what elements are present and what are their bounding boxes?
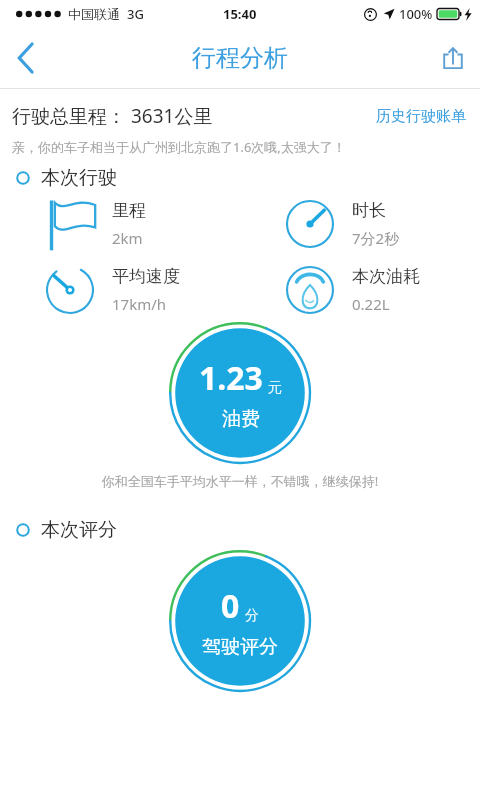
staticText: 0.22L	[352, 294, 390, 314]
staticText: 7分2秒	[352, 228, 400, 248]
button[interactable]: 里程	[0, 196, 240, 252]
button[interactable]: 1.23	[169, 322, 311, 464]
staticText: 行程分析	[192, 43, 288, 73]
staticText: 2km	[112, 228, 143, 248]
staticText: 17km/h	[112, 294, 167, 314]
button[interactable]: 历史行驶账单	[374, 105, 468, 128]
staticText: 你和全国车手平均水平一样，不错哦，继续保持!	[0, 472, 480, 490]
staticText: 100%	[399, 5, 433, 23]
button[interactable]: Back	[0, 32, 52, 84]
staticText: 中国联通	[68, 6, 120, 22]
staticText: 历史行驶账单	[376, 107, 466, 126]
staticText: 时长	[352, 200, 386, 221]
staticText: 15:40	[223, 5, 257, 23]
staticText: 本次行驶	[41, 166, 117, 190]
staticText: 本次评分	[41, 518, 117, 542]
staticText: 分	[245, 607, 259, 625]
staticText: 里程	[112, 200, 146, 221]
button[interactable]: 本次油耗	[240, 262, 480, 318]
staticText: 本次油耗	[352, 266, 420, 287]
staticText: 1.23	[199, 356, 263, 400]
button[interactable]: Share	[426, 31, 480, 85]
staticText: 行驶总里程： 3631公里	[12, 103, 213, 129]
button[interactable]: 平均速度	[0, 262, 240, 318]
staticText: 平均速度	[112, 266, 180, 287]
button[interactable]: 时长	[240, 196, 480, 252]
button[interactable]: 0	[169, 550, 311, 692]
staticText: 驾驶评分	[202, 635, 278, 659]
staticText: 0	[221, 584, 240, 628]
staticText: 3G	[127, 5, 144, 23]
staticText: 亲，你的车子相当于从广州到北京跑了1.6次哦,太强大了！	[12, 138, 346, 156]
staticText: 元	[268, 379, 282, 397]
staticText: 油费	[222, 407, 260, 431]
